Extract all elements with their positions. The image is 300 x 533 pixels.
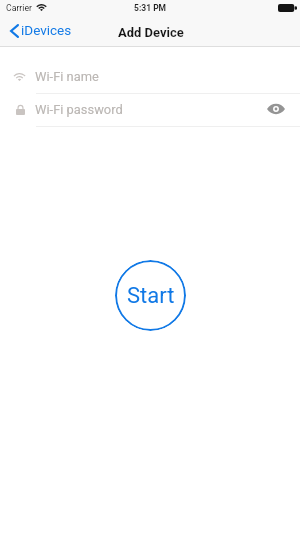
staticText: 5:31 PM (134, 3, 167, 13)
other: Wi-Fi (14, 73, 25, 81)
staticText: Wi-Fi name (35, 69, 99, 84)
button[interactable]: iDevices (4, 20, 76, 45)
other: Password (16, 104, 25, 115)
staticText: Carrier (6, 3, 32, 13)
button[interactable] (0, 61, 300, 94)
staticText: Wi-Fi password (35, 102, 123, 117)
staticText: Start (127, 283, 175, 309)
staticText: Add Device (118, 25, 184, 40)
button[interactable] (0, 93, 300, 126)
button[interactable]: Start (115, 260, 186, 331)
button[interactable]: Show password (264, 97, 288, 121)
staticText: iDevices (21, 22, 72, 38)
